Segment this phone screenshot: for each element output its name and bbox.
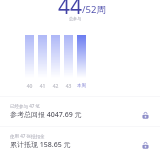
staticText: 40 bbox=[25, 83, 34, 90]
staticText: 已经参与 47 笔 bbox=[10, 103, 40, 109]
button[interactable]: 使用 47 张抵扣金 bbox=[0, 127, 160, 156]
other: Coupon detail bbox=[142, 142, 149, 149]
staticText: 43 bbox=[64, 83, 73, 90]
staticText: 参考总回报 4047.69 元 bbox=[10, 110, 82, 120]
staticText: 总参与 bbox=[69, 16, 81, 21]
button[interactable]: 已经参与 47 笔 bbox=[0, 97, 160, 126]
staticText: 累计抵现 158.65 元 bbox=[10, 140, 71, 150]
staticText: 44 bbox=[58, 0, 83, 21]
staticText: 使用 47 张抵扣金 bbox=[10, 133, 45, 139]
staticText: /52周 bbox=[82, 3, 106, 16]
staticText: 本周 bbox=[77, 83, 86, 89]
other: Participation detail bbox=[142, 112, 149, 119]
staticText: 41 bbox=[38, 83, 47, 90]
staticText: 42 bbox=[51, 83, 60, 90]
